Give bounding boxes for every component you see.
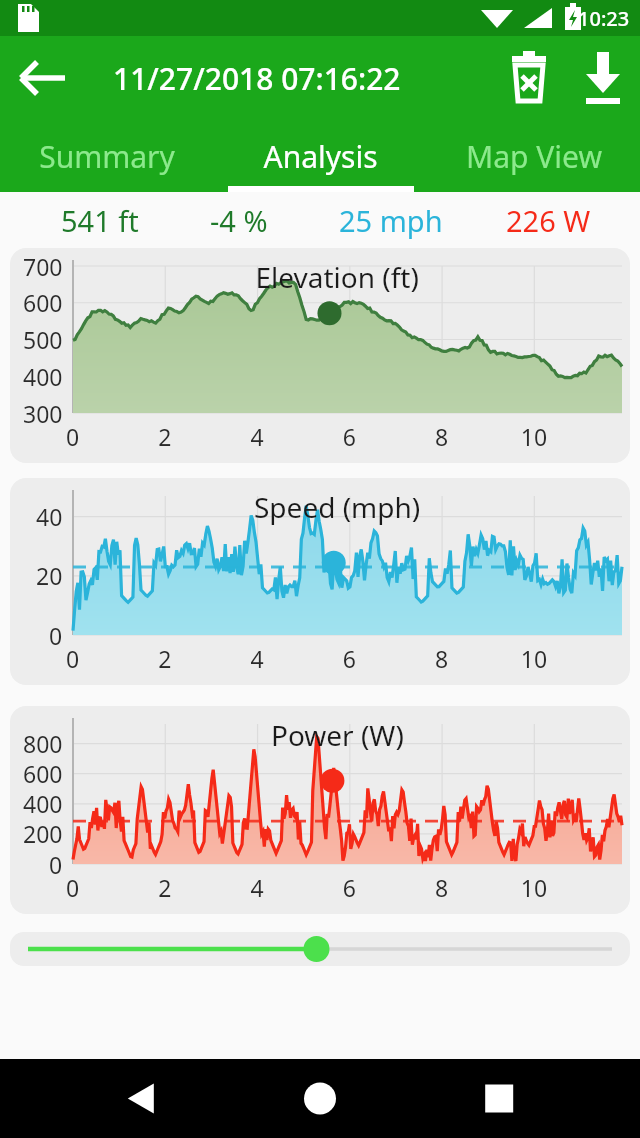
staticText: Summary	[39, 136, 175, 177]
button[interactable]: Analysis	[214, 120, 427, 192]
button[interactable]: Back	[8, 43, 78, 113]
button[interactable]: Map View	[427, 120, 640, 192]
staticText: 10:23	[578, 5, 630, 32]
staticText: -4 %	[210, 201, 268, 240]
staticText: Map View	[466, 136, 602, 177]
staticText: 226 W	[506, 201, 591, 240]
button[interactable]	[10, 706, 630, 914]
button[interactable]: Position slider	[10, 932, 630, 966]
button[interactable]: Summary	[0, 120, 214, 192]
staticText: 541 ft	[61, 201, 139, 240]
button[interactable]: Download	[570, 45, 636, 111]
button[interactable]	[10, 478, 630, 685]
staticText: Analysis	[263, 136, 378, 177]
button[interactable]	[10, 248, 630, 463]
staticText: 11/27/2018 07:16:22	[113, 58, 401, 99]
staticText: 25 mph	[339, 201, 443, 240]
button[interactable]: Delete	[496, 45, 562, 111]
